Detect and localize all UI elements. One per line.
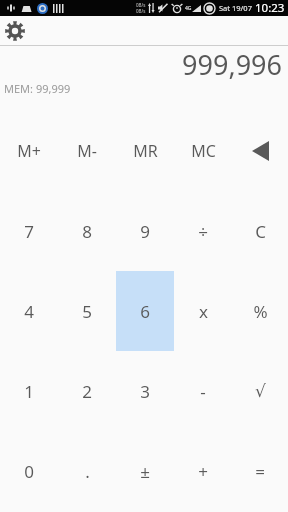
button[interactable]: MR xyxy=(116,111,174,191)
staticText: 3 xyxy=(140,380,150,403)
staticText: √ xyxy=(255,381,266,401)
staticText: M+ xyxy=(17,140,41,162)
button[interactable]: - xyxy=(174,351,232,431)
staticText: 999,996 xyxy=(182,46,282,79)
staticText: MEM: 99,999 xyxy=(4,81,71,96)
button[interactable]: Settings xyxy=(2,18,28,44)
staticText: = xyxy=(255,460,265,483)
button[interactable]: + xyxy=(174,431,232,511)
staticText: ÷ xyxy=(198,220,208,243)
staticText: 4 xyxy=(24,300,34,323)
button[interactable]: 3 xyxy=(116,351,174,431)
button[interactable]: ± xyxy=(116,431,174,511)
button[interactable]: 6 xyxy=(116,271,174,351)
staticText: . xyxy=(85,460,90,483)
button[interactable]: 9 xyxy=(116,191,174,271)
button[interactable]: % xyxy=(232,271,288,351)
button[interactable]: x xyxy=(174,271,232,351)
button[interactable]: 0 xyxy=(0,431,58,511)
staticText: - xyxy=(200,380,206,403)
button[interactable]: √ xyxy=(232,351,288,431)
staticText: Sat 19/07 xyxy=(219,3,252,13)
button[interactable]: 8 xyxy=(58,191,116,271)
button[interactable]: 2 xyxy=(58,351,116,431)
button[interactable]: 7 xyxy=(0,191,58,271)
staticText: 8 xyxy=(82,220,92,243)
staticText: MR xyxy=(133,140,158,162)
staticText: 6 xyxy=(140,300,150,323)
staticText: 0B/s xyxy=(136,2,146,8)
staticText: 9 xyxy=(140,220,150,243)
staticText: 2 xyxy=(82,380,92,403)
button[interactable]: 4 xyxy=(0,271,58,351)
button[interactable]: Backspace xyxy=(232,111,288,191)
button[interactable]: MC xyxy=(174,111,232,191)
staticText: 10:23 xyxy=(255,0,285,16)
button[interactable]: = xyxy=(232,431,288,511)
staticText: 0B/s xyxy=(136,8,146,14)
button[interactable]: M- xyxy=(58,111,116,191)
button[interactable]: . xyxy=(58,431,116,511)
staticText: 7 xyxy=(24,220,34,243)
staticText: MC xyxy=(191,140,216,162)
staticText: 1 xyxy=(24,380,34,403)
staticText: 5 xyxy=(82,300,92,323)
button[interactable]: 5 xyxy=(58,271,116,351)
button[interactable]: 1 xyxy=(0,351,58,431)
staticText: 4G xyxy=(185,5,192,12)
button[interactable]: ÷ xyxy=(174,191,232,271)
staticText: % xyxy=(253,300,268,323)
staticText: x xyxy=(199,300,208,323)
staticText: 0 xyxy=(24,460,34,483)
staticText: ± xyxy=(140,460,150,483)
button[interactable]: M+ xyxy=(0,111,58,191)
staticText: M- xyxy=(77,140,97,162)
staticText: + xyxy=(198,460,208,483)
button[interactable]: C xyxy=(232,191,288,271)
staticText: C xyxy=(255,220,266,243)
